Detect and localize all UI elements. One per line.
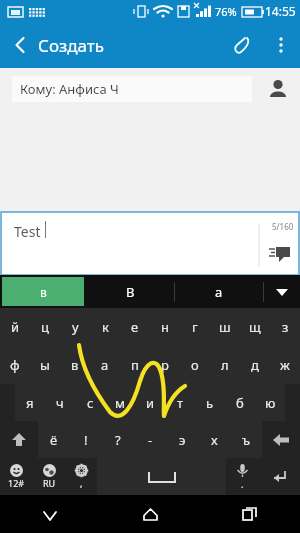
staticText: Создать bbox=[38, 34, 105, 57]
button[interactable]: л bbox=[210, 346, 240, 384]
button[interactable]: ф bbox=[0, 346, 30, 384]
staticText: ы bbox=[40, 356, 50, 374]
button[interactable]: В bbox=[86, 275, 174, 308]
button[interactable]: More options bbox=[262, 26, 300, 64]
button[interactable]: ж bbox=[270, 346, 300, 384]
button[interactable]: п bbox=[120, 346, 150, 384]
button[interactable]: ь bbox=[195, 384, 225, 421]
staticText: в bbox=[40, 284, 47, 300]
button[interactable]: б bbox=[225, 384, 255, 421]
button[interactable]: к bbox=[90, 308, 120, 346]
staticText: , bbox=[80, 477, 83, 489]
staticText: ц bbox=[41, 318, 49, 336]
staticText: т bbox=[177, 394, 184, 412]
button[interactable]: н bbox=[150, 308, 180, 346]
button[interactable]: щ bbox=[240, 308, 270, 346]
button[interactable]: ! bbox=[70, 421, 102, 458]
button[interactable]: я bbox=[15, 384, 45, 421]
staticText: и bbox=[146, 394, 155, 412]
staticText: з bbox=[282, 318, 289, 336]
staticText: . bbox=[241, 478, 244, 490]
button[interactable]: Test bbox=[1, 212, 299, 275]
staticText: ! bbox=[84, 431, 88, 449]
staticText: RU bbox=[43, 477, 56, 489]
staticText: ? bbox=[115, 431, 121, 449]
button[interactable]: д bbox=[240, 346, 270, 384]
button[interactable]: с bbox=[75, 384, 105, 421]
button[interactable]: о bbox=[180, 346, 210, 384]
staticText: а bbox=[101, 356, 109, 374]
staticText: Кому: Анфиса Ч bbox=[20, 80, 119, 98]
button[interactable]: э bbox=[166, 421, 198, 458]
button[interactable]: з bbox=[270, 308, 300, 346]
button[interactable]: Emoji and numbers bbox=[0, 458, 33, 495]
button[interactable]: Home bbox=[100, 495, 200, 533]
staticText: ш bbox=[219, 318, 231, 336]
button[interactable]: ц bbox=[30, 308, 60, 346]
staticText: л bbox=[221, 356, 229, 374]
button[interactable]: е bbox=[120, 308, 150, 346]
button[interactable]: у bbox=[60, 308, 90, 346]
button[interactable]: Back bbox=[0, 495, 100, 533]
button[interactable]: Attach bbox=[222, 25, 262, 65]
button[interactable]: Back bbox=[0, 25, 40, 65]
staticText: м bbox=[115, 394, 125, 412]
button[interactable]: Settings bbox=[65, 458, 97, 495]
staticText: ь bbox=[206, 394, 214, 412]
button[interactable]: Кому: Анфиса Ч bbox=[12, 76, 252, 102]
button[interactable]: й bbox=[0, 308, 30, 346]
staticText: р bbox=[161, 356, 169, 374]
staticText: э bbox=[179, 431, 186, 449]
staticText: д bbox=[251, 356, 259, 374]
button[interactable]: а bbox=[175, 275, 263, 308]
button[interactable]: и bbox=[135, 384, 165, 421]
button[interactable]: ы bbox=[30, 346, 60, 384]
button[interactable]: ъ bbox=[230, 421, 262, 458]
staticText: я bbox=[26, 394, 34, 412]
button[interactable]: ё bbox=[38, 421, 70, 458]
staticText: б bbox=[236, 394, 244, 412]
button[interactable]: Change language bbox=[33, 458, 65, 495]
staticText: 12# bbox=[8, 477, 25, 489]
staticText: е bbox=[131, 318, 139, 336]
button[interactable]: ш bbox=[210, 308, 240, 346]
staticText: ю bbox=[265, 394, 276, 412]
staticText: с bbox=[87, 394, 94, 412]
staticText: к bbox=[102, 318, 109, 336]
button[interactable]: ч bbox=[45, 384, 75, 421]
staticText: н bbox=[161, 318, 169, 336]
button[interactable]: Enter bbox=[258, 458, 300, 495]
button[interactable]: м bbox=[105, 384, 135, 421]
staticText: ё bbox=[50, 431, 58, 449]
staticText: 76% bbox=[215, 4, 237, 19]
button[interactable]: Backspace bbox=[262, 421, 300, 458]
button[interactable]: - bbox=[134, 421, 166, 458]
button[interactable]: Send bbox=[263, 237, 297, 271]
staticText: В bbox=[126, 283, 135, 301]
button[interactable]: г bbox=[180, 308, 210, 346]
staticText: 14:55 bbox=[265, 3, 296, 19]
button[interactable]: Space bbox=[97, 458, 226, 495]
staticText: й bbox=[11, 318, 20, 336]
staticText: 5/160 bbox=[272, 221, 294, 232]
button[interactable]: Recent apps bbox=[200, 495, 300, 533]
staticText: у bbox=[72, 318, 79, 336]
staticText: г bbox=[192, 318, 198, 336]
button[interactable]: в bbox=[2, 277, 84, 306]
staticText: щ bbox=[249, 318, 261, 336]
button[interactable]: х bbox=[198, 421, 230, 458]
button[interactable]: Shift bbox=[0, 421, 38, 458]
button[interactable]: Voice input bbox=[226, 458, 258, 495]
button[interactable]: Choose contact bbox=[262, 73, 294, 105]
button[interactable]: ю bbox=[255, 384, 285, 421]
button[interactable]: ? bbox=[102, 421, 134, 458]
staticText: ф bbox=[10, 356, 20, 374]
staticText: в bbox=[71, 356, 79, 374]
button[interactable]: More suggestions bbox=[264, 275, 300, 308]
button[interactable]: р bbox=[150, 346, 180, 384]
button[interactable]: в bbox=[60, 346, 90, 384]
staticText: ъ bbox=[242, 431, 251, 449]
button[interactable]: а bbox=[90, 346, 120, 384]
staticText: о bbox=[191, 356, 199, 374]
button[interactable]: т bbox=[165, 384, 195, 421]
